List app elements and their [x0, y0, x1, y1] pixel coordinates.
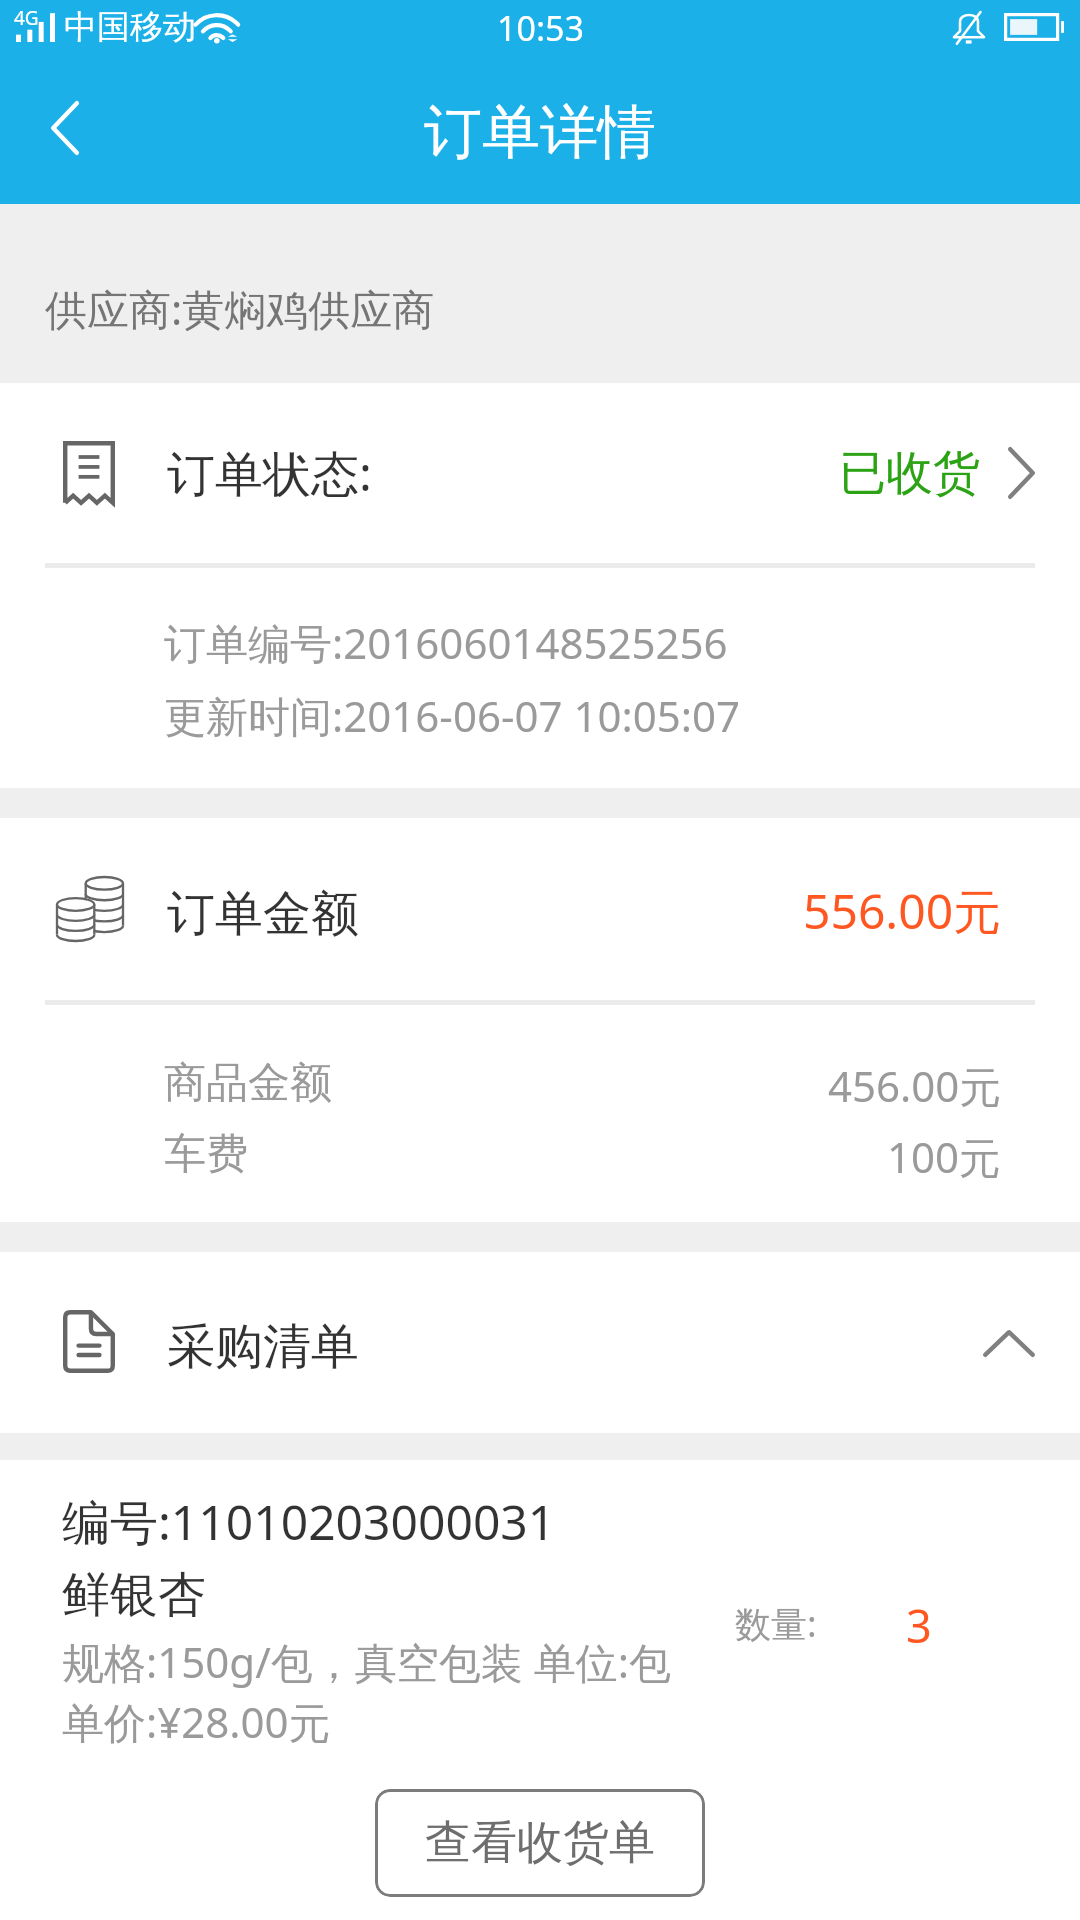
button[interactable]: 编号:11010203000031 [0, 1460, 1080, 1750]
staticText: 556.00元 [803, 878, 1002, 944]
staticText: 规格:150g/包，真空包装 单位:包 [62, 1633, 671, 1690]
staticText: 10:53 [497, 5, 584, 51]
staticText: 已收货 [839, 444, 980, 503]
staticText: 数量: [735, 1599, 817, 1648]
button[interactable]: 订单状态: [0, 383, 1080, 563]
staticText: 订单状态: [167, 440, 372, 506]
staticText: 鲜银杏 [62, 1565, 206, 1625]
button[interactable]: 查看收货单 [375, 1789, 705, 1897]
staticText: 中国移动 [64, 6, 196, 48]
staticText: 456.00元 [828, 1057, 1002, 1114]
staticText: 供应商:黄焖鸡供应商 [45, 280, 435, 337]
staticText: 车费 [164, 1128, 248, 1181]
staticText: 3 [906, 1595, 932, 1656]
staticText: 订单金额 [167, 884, 359, 944]
staticText: 4G [14, 5, 39, 31]
staticText: 单价:¥28.00元 [62, 1693, 331, 1750]
button[interactable]: Back [0, 60, 130, 204]
staticText: 订单编号:2016060148525256 [164, 614, 728, 671]
staticText: 查看收货单 [425, 1814, 655, 1872]
staticText: 采购清单 [167, 1317, 359, 1377]
staticText: 更新时间:2016-06-07 10:05:07 [164, 687, 741, 744]
staticText: 订单详情 [424, 96, 656, 169]
staticText: 商品金额 [164, 1057, 332, 1110]
button[interactable]: 采购清单 [0, 1252, 1080, 1433]
staticText: 编号:11010203000031 [62, 1489, 556, 1555]
staticText: 100元 [887, 1128, 1002, 1185]
